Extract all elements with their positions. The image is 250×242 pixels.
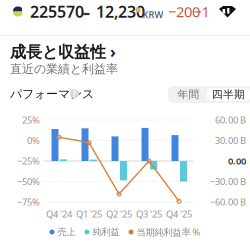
staticText: Q1 '25 [76, 208, 102, 220]
staticText: −1 [193, 2, 209, 21]
staticText: 0% [27, 134, 40, 147]
staticText: −75% [17, 196, 40, 208]
staticText: 年間 [177, 88, 199, 101]
button[interactable]: 年間 [170, 88, 207, 101]
staticText: 成長と収益性 › [10, 41, 116, 62]
staticText: −200 [168, 2, 200, 21]
staticText: Q4 '25 [166, 208, 192, 220]
button[interactable]: 四半期 [207, 88, 250, 101]
staticText: Q3 '25 [136, 208, 162, 220]
staticText: Q4 '24 [46, 208, 72, 220]
staticText: 売上 [57, 226, 75, 238]
staticText: パフォーマンス [10, 87, 94, 101]
staticText: 25% [22, 114, 40, 126]
staticText: 60.00 B [215, 114, 246, 126]
staticText: −50% [17, 175, 40, 188]
staticText: ? [72, 89, 76, 99]
staticText: 0.00 [228, 155, 246, 167]
staticText: Q2 '25 [106, 208, 132, 220]
staticText: 直近の業績と利益率 [10, 62, 118, 76]
staticText: −25% [17, 155, 40, 167]
staticText: 純利益 [92, 226, 119, 238]
staticText: 12,230 [96, 1, 145, 22]
staticText: 当期純利益率 % [136, 226, 200, 238]
staticText: −60.00 B [210, 196, 246, 208]
staticText: 四半期 [212, 88, 245, 101]
staticText: 225570 [30, 1, 84, 22]
staticText: 30.00 B [215, 134, 246, 147]
staticText: KRW [143, 8, 164, 21]
staticText: −30.00 B [210, 175, 246, 188]
